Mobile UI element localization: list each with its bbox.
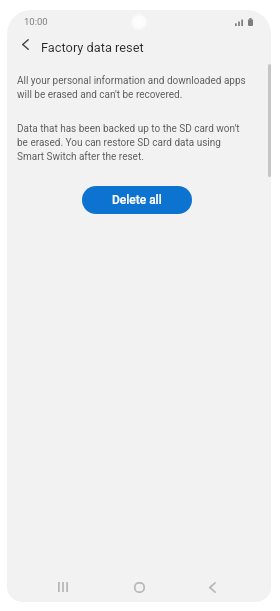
button[interactable]: Back: [13, 32, 37, 56]
button[interactable]: Recent apps: [49, 573, 77, 601]
button[interactable]: Delete all: [82, 186, 192, 214]
staticText: Factory data reset: [41, 40, 144, 55]
button[interactable]: Home: [125, 573, 153, 601]
staticText: Data that has been backed up to the SD c…: [17, 123, 248, 163]
staticText: All your personal information and downlo…: [17, 75, 248, 101]
staticText: Delete all: [112, 193, 162, 207]
staticText: 10:00: [24, 16, 48, 27]
button[interactable]: Back: [198, 573, 226, 601]
